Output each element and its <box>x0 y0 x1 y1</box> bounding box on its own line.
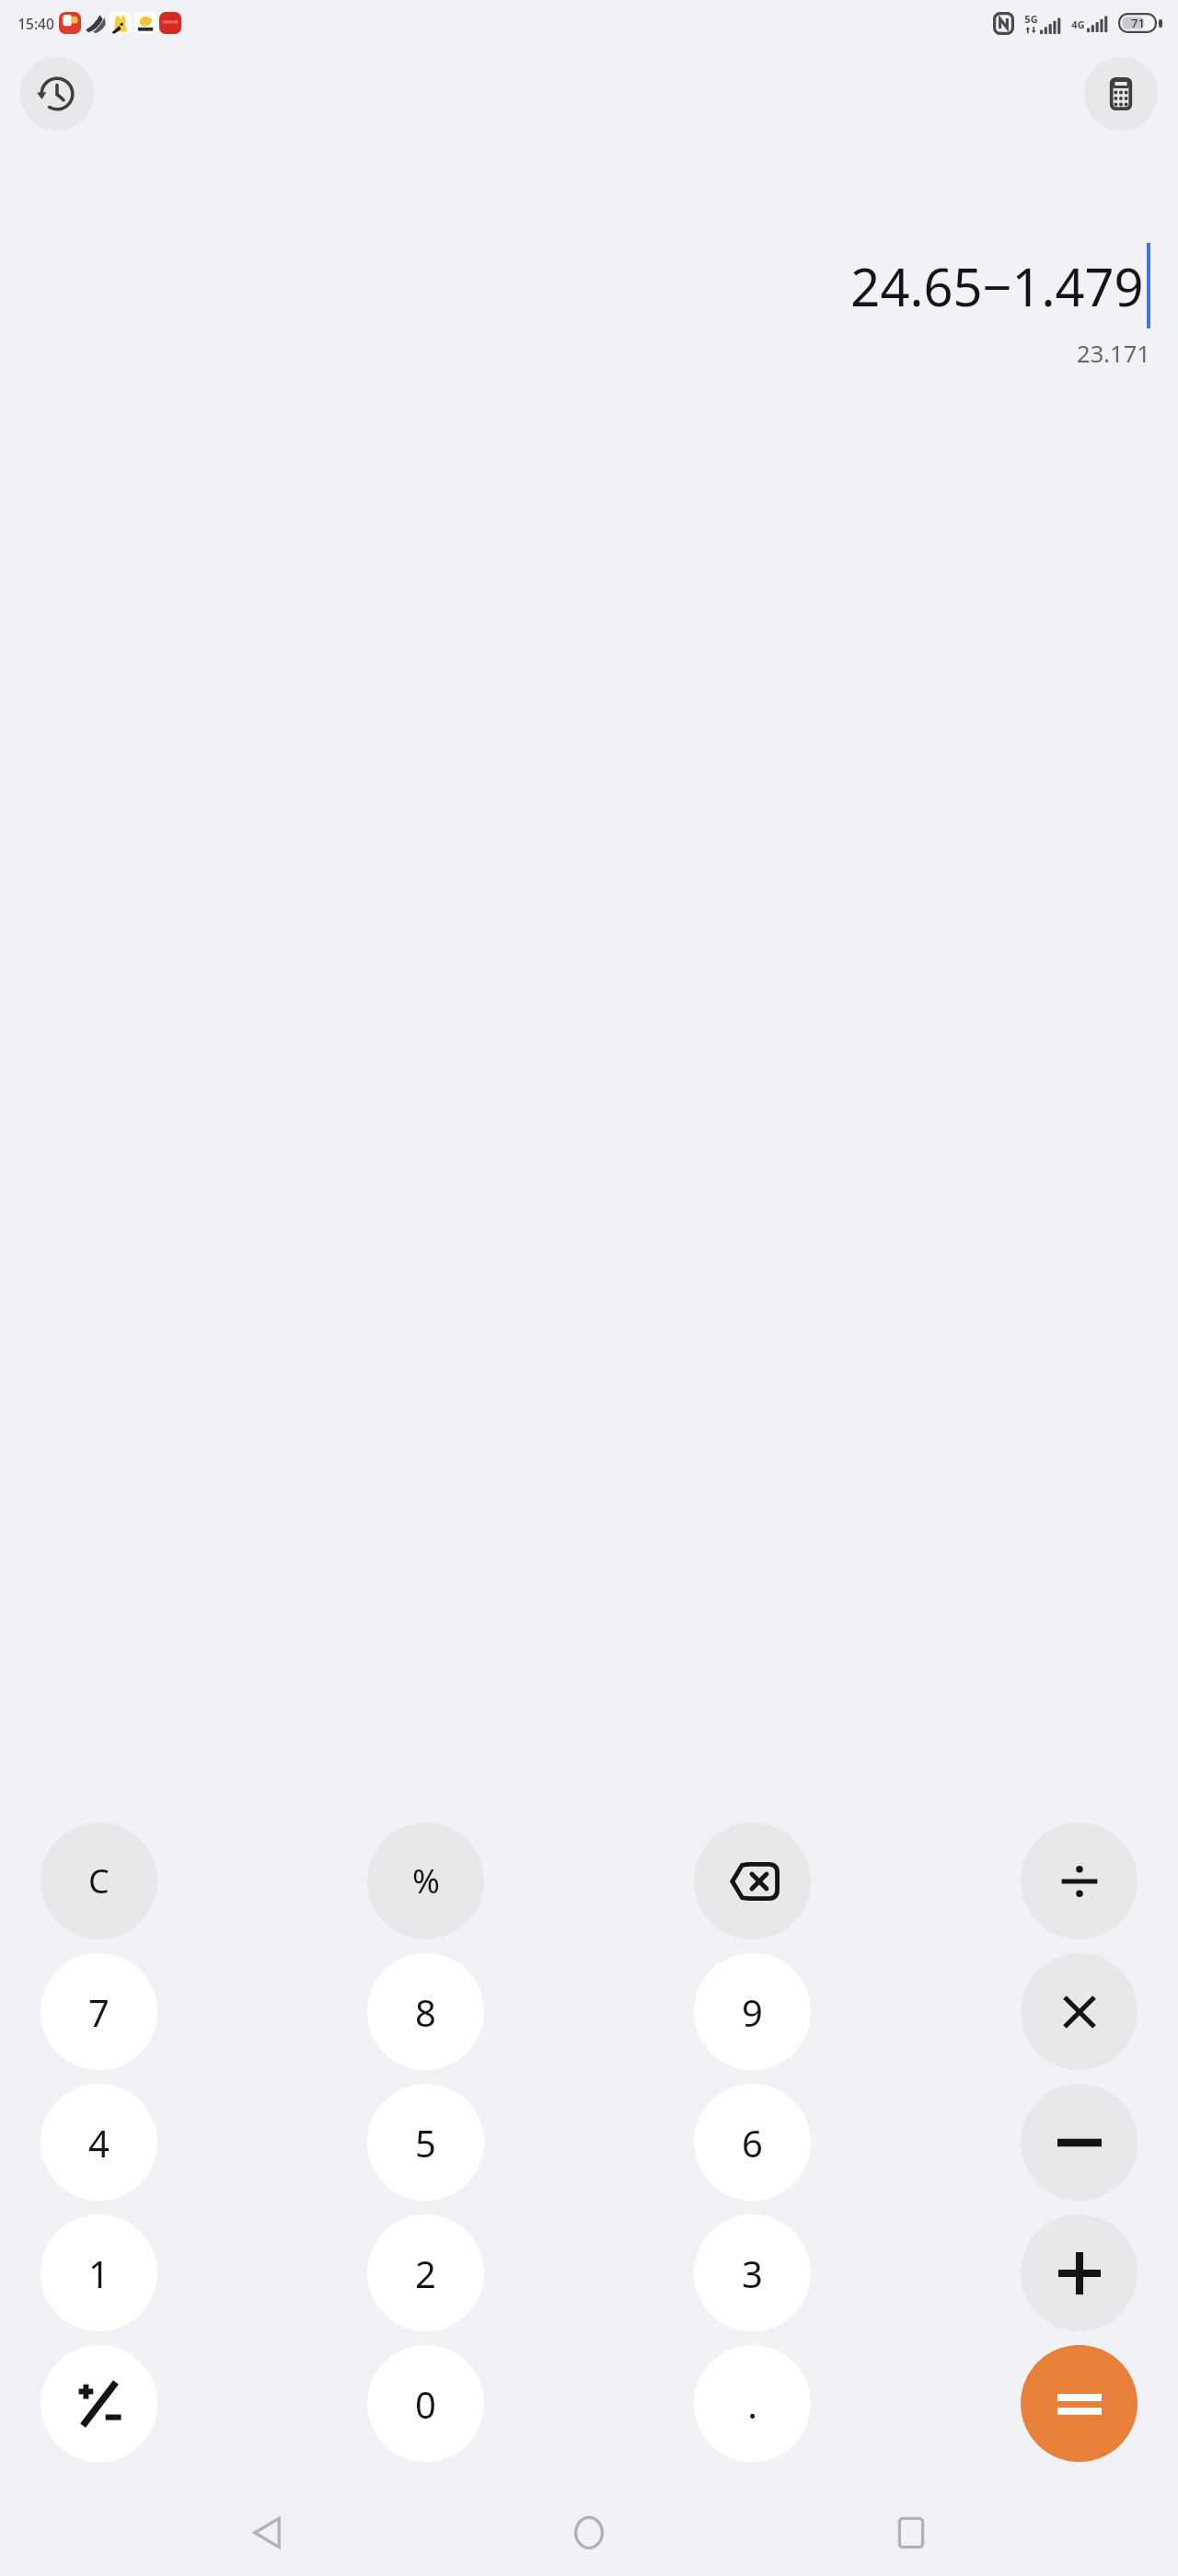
staticText: 2 <box>415 2248 436 2298</box>
button[interactable]: 9 <box>694 1953 811 2070</box>
button[interactable]: 0 <box>367 2345 484 2462</box>
staticText: 24.65−1.479 <box>850 251 1144 321</box>
staticText: 7 <box>88 1987 110 2037</box>
button[interactable]: Multiply <box>1021 1953 1138 2070</box>
button[interactable]: Minus <box>1021 2084 1138 2201</box>
staticText: 6 <box>742 2118 763 2168</box>
button[interactable]: 1 <box>40 2214 157 2331</box>
staticText: % <box>412 1858 440 1903</box>
button[interactable]: History <box>20 57 94 131</box>
button[interactable]: Divide <box>1021 1823 1138 1939</box>
button[interactable]: Percent <box>367 1823 484 1939</box>
button[interactable]: C <box>40 1823 157 1939</box>
staticText: 8 <box>415 1987 436 2037</box>
button[interactable]: 5 <box>367 2084 484 2201</box>
staticText: 4 <box>88 2118 110 2168</box>
button[interactable]: Backspace <box>694 1823 811 1939</box>
staticText: 0 <box>415 2379 436 2429</box>
staticText: . <box>747 2379 757 2429</box>
staticText: 23.171 <box>1077 338 1150 370</box>
staticText: 5G <box>1024 12 1038 26</box>
staticText: 1 <box>88 2248 110 2298</box>
button[interactable]: 4 <box>40 2084 157 2201</box>
staticText: 15:40 <box>17 14 54 33</box>
button[interactable]: Decimal point <box>694 2345 811 2462</box>
staticText: 5 <box>415 2118 436 2168</box>
button[interactable]: Recents <box>856 2502 966 2563</box>
staticText: 3 <box>742 2248 763 2298</box>
staticText: 71 <box>1131 15 1145 31</box>
button[interactable]: 6 <box>694 2084 811 2201</box>
staticText: 4G <box>1071 17 1085 31</box>
button[interactable]: 8 <box>367 1953 484 2070</box>
button[interactable]: Plus minus <box>40 2345 157 2462</box>
button[interactable]: 7 <box>40 1953 157 2070</box>
staticText: C <box>88 1858 110 1903</box>
button[interactable]: Back <box>212 2502 322 2563</box>
button[interactable]: Equals <box>1021 2345 1138 2462</box>
button[interactable]: Home <box>534 2502 644 2563</box>
button[interactable]: 2 <box>367 2214 484 2331</box>
button[interactable]: Scientific calculator <box>1084 57 1158 131</box>
button[interactable]: 3 <box>694 2214 811 2331</box>
staticText: 9 <box>742 1987 763 2037</box>
button[interactable]: Plus <box>1021 2214 1138 2331</box>
